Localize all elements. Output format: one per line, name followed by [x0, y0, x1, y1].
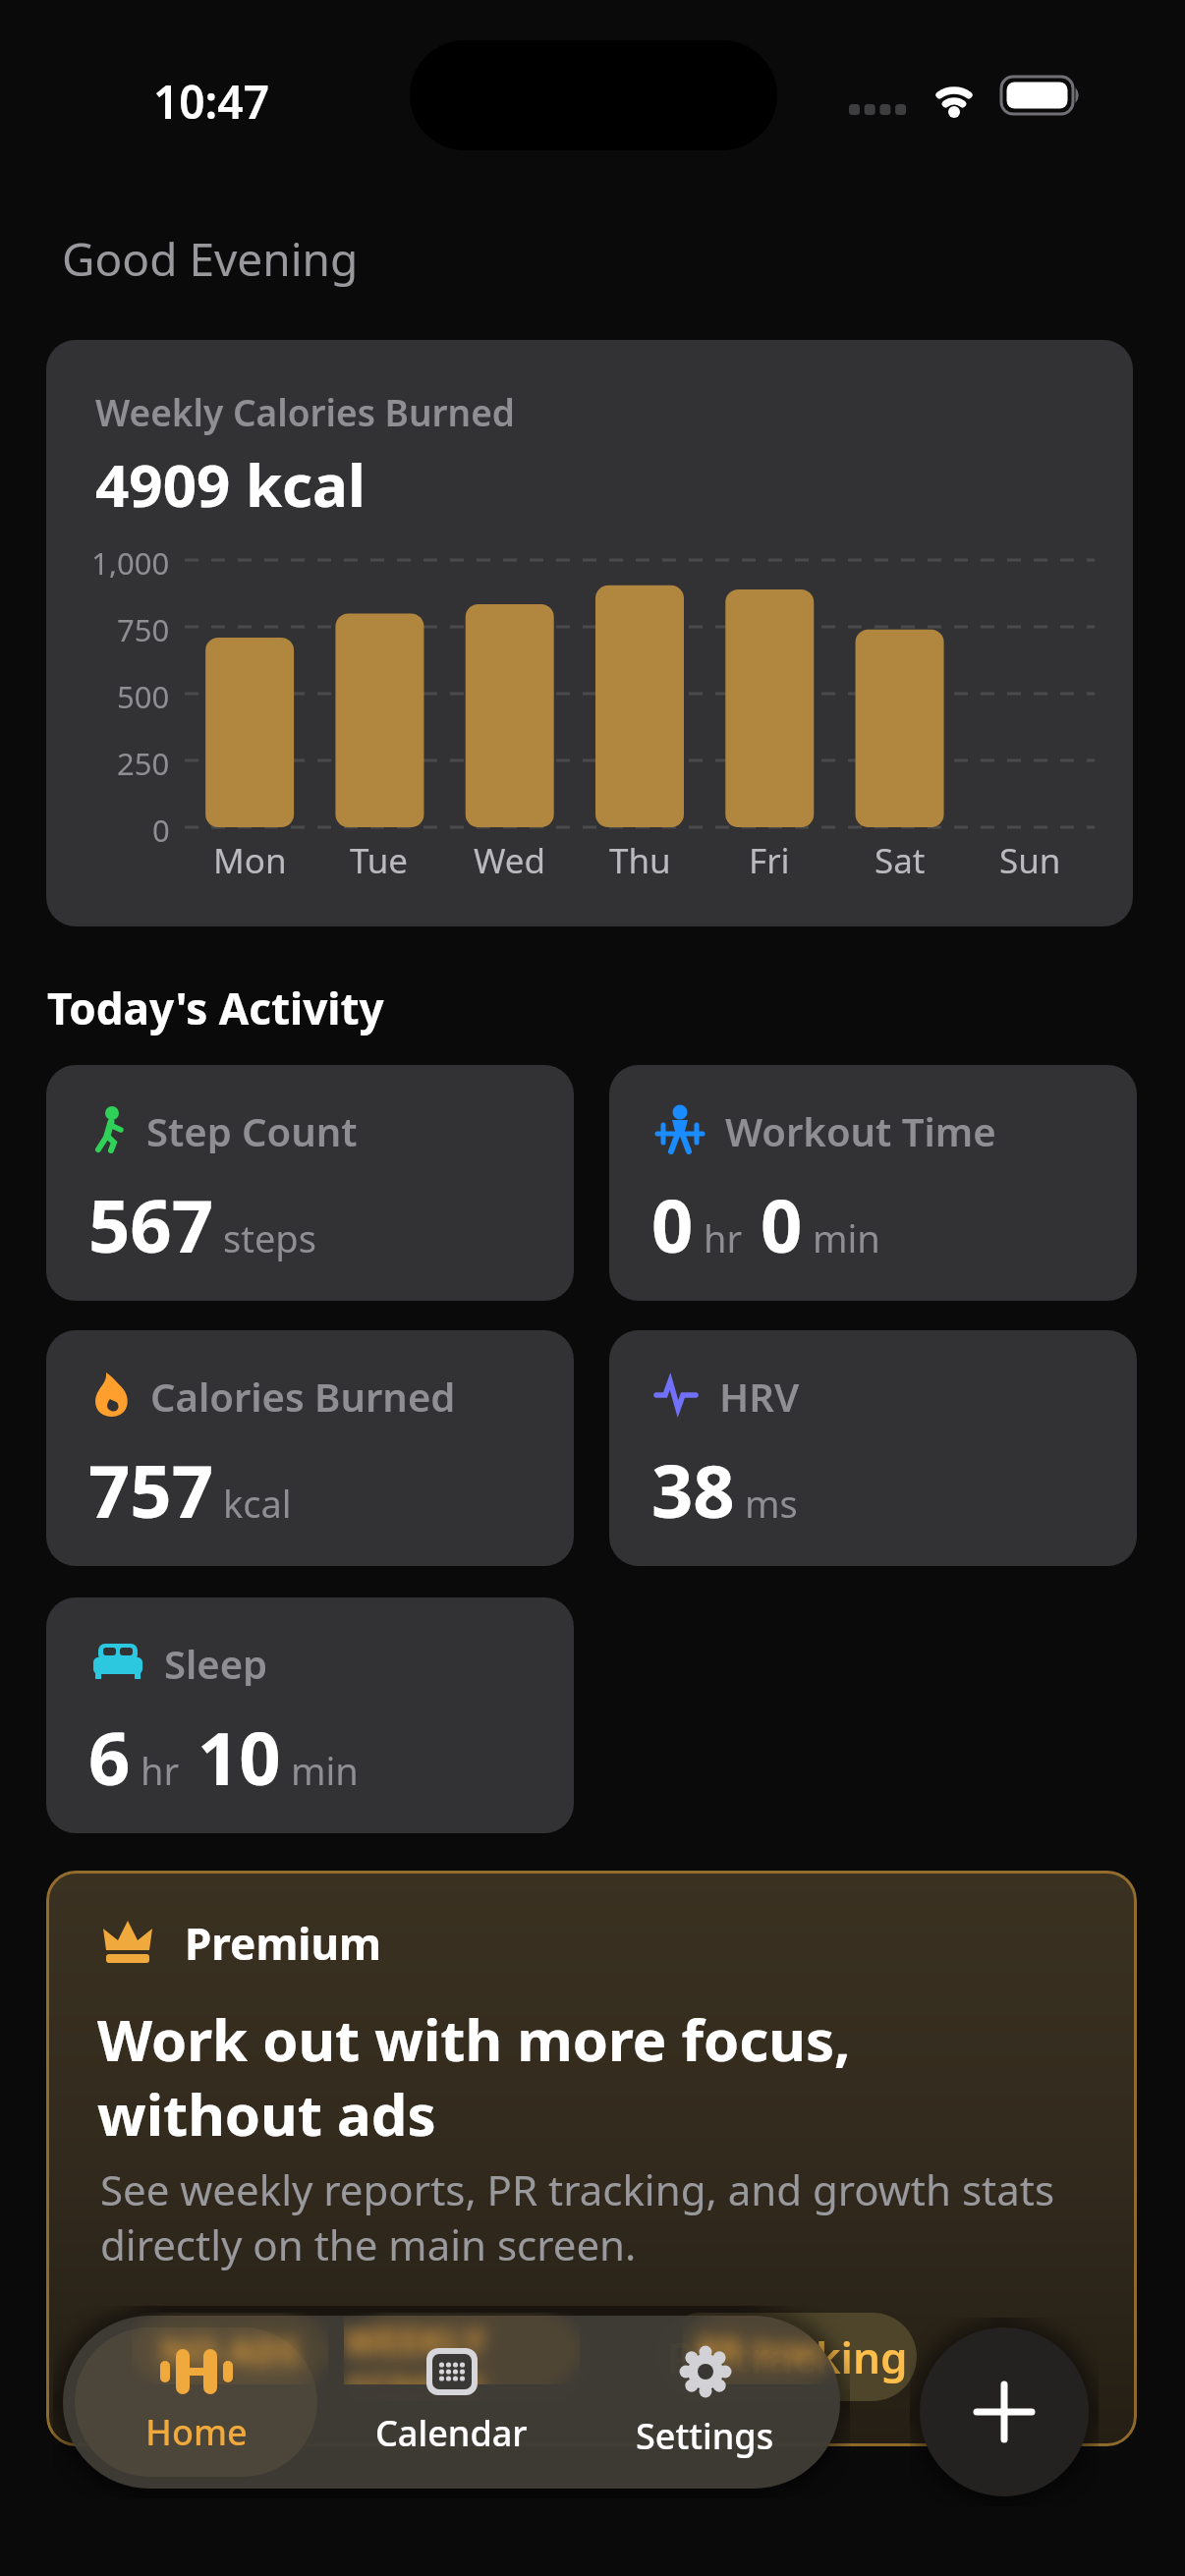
button[interactable]: Weekly Report	[341, 2313, 589, 2401]
button[interactable]: Settings	[584, 2327, 826, 2477]
staticText: Step Count	[146, 1104, 358, 1153]
staticText: Today's Activity	[47, 979, 384, 1037]
staticText: 567	[88, 1175, 213, 1274]
staticText: Calendar	[375, 2409, 528, 2457]
staticText: Tue	[350, 837, 409, 880]
staticText: HRV	[719, 1370, 800, 1419]
staticText: 0	[761, 1175, 803, 1274]
button[interactable]: Sleep	[46, 1597, 574, 1833]
staticText: Weekly Calories Burned	[95, 387, 515, 436]
button[interactable]	[920, 2327, 1089, 2496]
staticText: NO ADS	[160, 2325, 301, 2375]
button[interactable]: HRV	[609, 1330, 1137, 1566]
staticText: No Ads	[151, 2327, 302, 2386]
staticText: 4909 kcal	[95, 444, 366, 525]
staticText: min	[813, 1212, 880, 1263]
button[interactable]: Step Count	[46, 1065, 574, 1301]
staticText: hr	[704, 1212, 743, 1263]
button[interactable]: PR tracking	[657, 2313, 917, 2401]
staticText: See weekly reports, PR tracking, and gro…	[100, 2161, 1054, 2272]
staticText: 757	[88, 1440, 213, 1540]
button[interactable]: No Ads	[123, 2313, 329, 2401]
staticText: Home	[145, 2408, 248, 2456]
staticText: 10	[197, 1708, 281, 1807]
button[interactable]: Calories Burned	[46, 1330, 574, 1566]
button[interactable]: Premium	[46, 1871, 1137, 2446]
button[interactable]: Weekly Calories Burned	[46, 340, 1133, 926]
staticText: Weekly Report	[341, 2313, 589, 2401]
staticText: Sat	[875, 837, 926, 880]
staticText: Workout Time	[725, 1104, 996, 1153]
staticText: WEEKLY REPORT	[344, 2316, 580, 2384]
button[interactable]	[75, 2327, 317, 2477]
staticText: Work out with more focus, without ads	[97, 2000, 851, 2153]
staticText: PR tracking	[667, 2327, 908, 2386]
staticText: PR trac	[697, 2325, 824, 2375]
button[interactable]: Home	[75, 2327, 317, 2477]
staticText: 10:47	[153, 71, 269, 133]
staticText: min	[291, 1745, 359, 1796]
staticText: 0	[651, 1175, 694, 1274]
staticText: Settings	[636, 2412, 774, 2460]
staticText: Premium	[185, 1914, 381, 1969]
staticText: steps	[223, 1212, 316, 1263]
staticText: 750	[117, 609, 170, 644]
button[interactable]: Calendar	[330, 2327, 573, 2477]
staticText: Thu	[609, 837, 671, 880]
staticText: Wed	[474, 837, 546, 880]
staticText: 0	[152, 810, 170, 845]
staticText: Sun	[999, 837, 1061, 880]
staticText: 250	[117, 743, 170, 778]
staticText: Good Evening	[62, 228, 359, 290]
staticText: Sleep	[164, 1637, 268, 1686]
staticText: ms	[745, 1478, 798, 1529]
staticText: Mon	[213, 837, 287, 880]
staticText: 1,000	[91, 542, 170, 578]
staticText: 500	[117, 676, 170, 711]
staticText: Fri	[749, 837, 790, 880]
staticText: 6	[88, 1708, 131, 1807]
staticText: Calories Burned	[150, 1370, 456, 1419]
staticText: 38	[651, 1440, 735, 1540]
staticText: hr	[141, 1745, 180, 1796]
button[interactable]: Workout Time	[609, 1065, 1137, 1301]
staticText: kcal	[223, 1478, 292, 1529]
